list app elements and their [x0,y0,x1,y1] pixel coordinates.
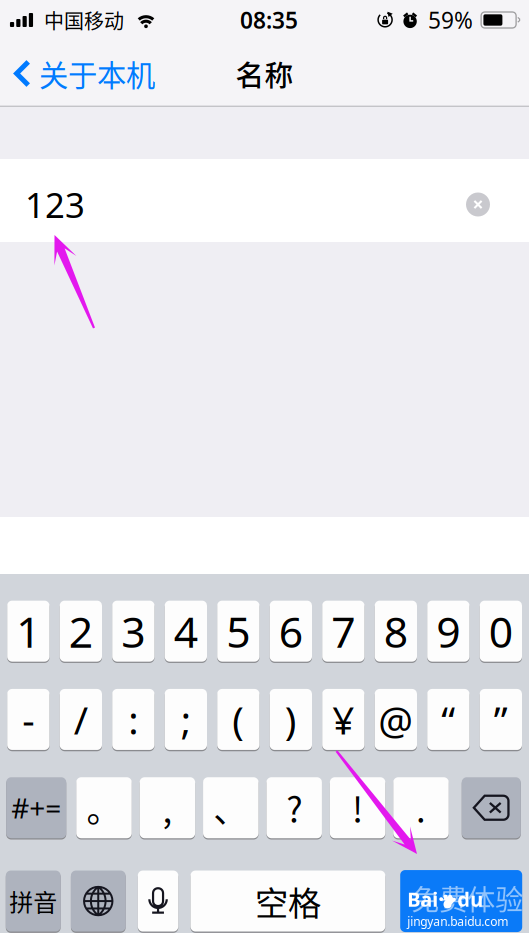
button[interactable]: #+= [6,777,66,839]
staticText: 3 [121,603,145,659]
button[interactable]: 拼音 [6,870,61,932]
button[interactable]: Clear text [456,182,500,226]
button[interactable]: . [393,777,449,839]
staticText: 59% [428,5,473,35]
staticText: 2 [69,603,93,659]
button[interactable]: 4 [165,600,207,662]
button[interactable]: 、 [203,777,258,839]
staticText: 1 [16,603,40,659]
staticText: @ [378,694,413,745]
staticText: Bai [407,886,438,912]
staticText: / [74,694,88,745]
button[interactable]: 3 [112,600,154,662]
button[interactable]: “ [427,688,469,751]
staticText: 4 [174,603,198,659]
button[interactable]: , [140,777,195,839]
button[interactable]: - [7,688,49,751]
staticText: 关于本机 [39,52,155,95]
staticText: 、 [213,783,248,833]
button[interactable]: 8 [375,600,417,662]
staticText: 7 [331,603,355,659]
button[interactable]: ” [480,688,522,751]
button[interactable]: 。 [76,777,132,839]
staticText: 0 [489,603,513,659]
button[interactable]: 7 [322,600,364,662]
staticText: ? [286,783,302,833]
staticText: 123 [25,181,85,227]
button[interactable]: 0 [480,600,522,662]
staticText: 空格 [255,877,321,925]
staticText: ; [181,694,191,745]
button[interactable]: 5 [217,600,259,662]
button[interactable]: Dictation [138,870,178,932]
staticText: : [128,694,138,745]
staticText: 名称 [235,53,293,94]
button[interactable]: Delete [462,777,521,839]
button[interactable]: Next keyboard [71,870,126,932]
button[interactable]: Search [400,870,522,932]
button[interactable]: ! [330,777,385,839]
staticText: du [457,886,483,912]
button[interactable]: 1 [7,600,49,662]
staticText: 。 [86,783,121,833]
button[interactable]: : [112,688,154,751]
button[interactable]: ¥ [322,688,364,751]
button[interactable]: ? [266,777,322,839]
staticText: 拼音 [9,884,57,918]
button[interactable]: 9 [427,600,469,662]
staticText: 8 [384,603,408,659]
staticText: . [416,783,426,833]
staticText: , [162,783,172,833]
button[interactable]: 6 [270,600,312,662]
staticText: 6 [279,603,303,659]
button[interactable]: / [60,688,102,751]
button[interactable]: 空格 [190,870,385,932]
staticText: #+= [11,789,61,826]
staticText: jingyan.baidu.com [407,913,508,929]
button[interactable]: ( [217,688,259,751]
staticText: 5 [226,603,250,659]
staticText: ! [352,783,363,833]
button[interactable]: ) [270,688,312,751]
staticText: 中国移动 [44,5,124,34]
button[interactable]: @ [375,688,417,751]
staticText: ) [285,694,297,745]
staticText: 08:35 [240,5,298,35]
staticText: “ [441,694,455,745]
staticText: ” [494,694,508,745]
button[interactable]: 2 [60,600,102,662]
button[interactable]: ; [165,688,207,751]
staticText: - [22,694,34,745]
staticText: 9 [436,603,460,659]
staticText: ¥ [332,694,354,745]
button[interactable]: 关于本机 [0,43,167,104]
staticText: ( [232,694,244,745]
staticText: 免费体验 [411,878,523,918]
